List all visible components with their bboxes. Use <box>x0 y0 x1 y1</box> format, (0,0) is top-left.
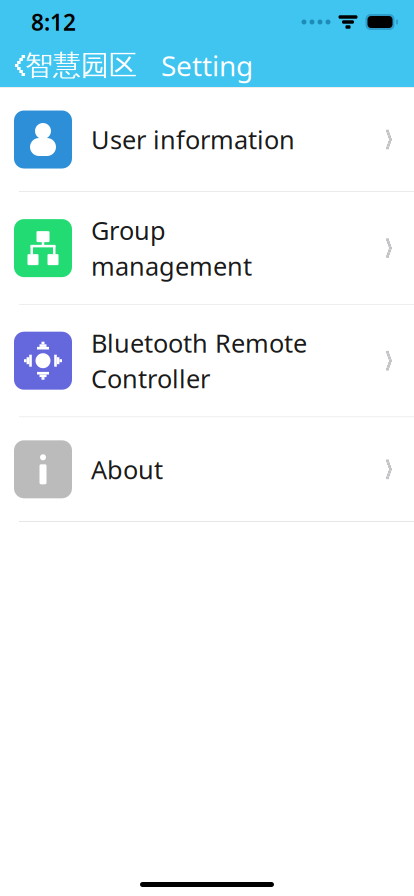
button[interactable]: About <box>0 417 414 521</box>
button[interactable]: Group <box>0 192 414 304</box>
staticText: management <box>91 249 252 283</box>
staticText: About <box>91 452 163 486</box>
staticText: 8:12 <box>31 7 76 37</box>
button[interactable]: 智慧园区 <box>0 40 145 91</box>
staticText: Bluetooth Remote <box>91 326 307 360</box>
staticText: 智慧园区 <box>25 48 137 83</box>
button[interactable]: Bluetooth Remote <box>0 305 414 417</box>
staticText: Controller <box>91 362 210 395</box>
button[interactable]: User information <box>0 87 414 191</box>
staticText: User information <box>91 123 295 156</box>
staticText: Setting <box>161 47 253 84</box>
staticText: Group <box>91 213 166 247</box>
